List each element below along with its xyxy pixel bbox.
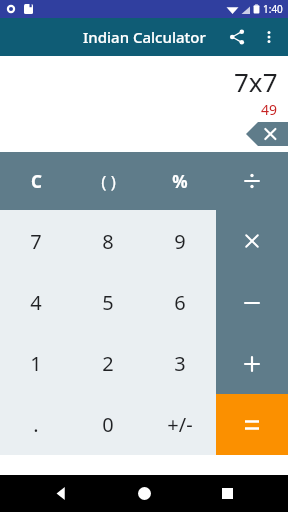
- button[interactable]: +/-: [144, 394, 216, 455]
- staticText: 7x7: [234, 64, 278, 99]
- button[interactable]: Equals: [216, 394, 288, 455]
- button[interactable]: Plus: [216, 333, 288, 394]
- staticText: C: [31, 170, 42, 193]
- staticText: +/-: [167, 411, 193, 438]
- button[interactable]: 8: [72, 210, 144, 272]
- staticText: ( ): [101, 170, 116, 193]
- staticText: 2: [102, 350, 114, 377]
- button[interactable]: Home: [122, 475, 166, 512]
- button[interactable]: .: [0, 394, 72, 455]
- button[interactable]: Multiply: [216, 210, 288, 272]
- staticText: Indian Calculator: [83, 27, 206, 47]
- staticText: 8: [102, 228, 114, 255]
- button[interactable]: Recent apps: [205, 475, 249, 512]
- button[interactable]: C: [0, 152, 72, 210]
- staticText: 0: [102, 411, 114, 438]
- staticText: %: [172, 170, 188, 193]
- staticText: 4: [30, 289, 42, 316]
- button[interactable]: Divide: [216, 152, 288, 210]
- button[interactable]: ( ): [72, 152, 144, 210]
- staticText: 3: [174, 350, 186, 377]
- button[interactable]: %: [144, 152, 216, 210]
- button[interactable]: More options: [254, 22, 284, 52]
- button[interactable]: Minus: [216, 272, 288, 333]
- button[interactable]: 3: [144, 333, 216, 394]
- button[interactable]: 0: [72, 394, 144, 455]
- button[interactable]: Backspace: [246, 122, 288, 146]
- button[interactable]: 7: [0, 210, 72, 272]
- staticText: 1:40: [263, 2, 283, 16]
- button[interactable]: 6: [144, 272, 216, 333]
- staticText: 9: [174, 228, 186, 255]
- button[interactable]: Back: [39, 475, 83, 512]
- button[interactable]: 2: [72, 333, 144, 394]
- staticText: 6: [174, 289, 186, 316]
- staticText: .: [33, 411, 39, 438]
- button[interactable]: 9: [144, 210, 216, 272]
- staticText: 7: [30, 228, 42, 255]
- button[interactable]: 5: [72, 272, 144, 333]
- staticText: 5: [102, 289, 114, 316]
- staticText: 49: [261, 100, 278, 119]
- button[interactable]: 1: [0, 333, 72, 394]
- button[interactable]: 4: [0, 272, 72, 333]
- staticText: 1: [30, 350, 42, 377]
- button[interactable]: Share: [220, 20, 254, 54]
